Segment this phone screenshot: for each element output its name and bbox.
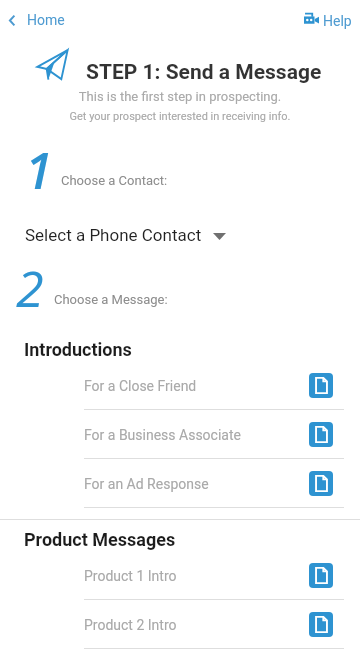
- other: Open message template: [309, 422, 333, 447]
- staticText: Help: [323, 13, 352, 29]
- staticText: Select a Phone Contact: [25, 225, 202, 245]
- button[interactable]: Help: [298, 8, 356, 34]
- staticText: Product 2 Intro: [84, 617, 177, 633]
- staticText: Product 1 Intro: [84, 568, 177, 584]
- staticText: Choose a Message:: [54, 292, 168, 307]
- staticText: For an Ad Response: [84, 476, 209, 492]
- button[interactable]: Product 2 Intro: [0, 600, 360, 649]
- staticText: Home: [27, 12, 65, 28]
- staticText: For a Business Associate: [84, 427, 241, 443]
- staticText: Product Messages: [24, 529, 176, 550]
- other: Open message template: [309, 471, 333, 496]
- button[interactable]: Product 1 Intro: [0, 551, 360, 600]
- staticText: Get your prospect interested in receivin…: [0, 110, 360, 123]
- other: Open message template: [309, 563, 333, 588]
- other: Open message template: [309, 373, 333, 398]
- other: Open message template: [309, 612, 333, 637]
- button[interactable]: For a Close Friend: [0, 361, 360, 410]
- staticText: 2: [16, 254, 44, 322]
- button[interactable]: For an Ad Response: [0, 459, 360, 508]
- staticText: STEP 1: Send a Message: [86, 60, 322, 85]
- button[interactable]: For a Business Associate: [0, 410, 360, 459]
- staticText: For a Close Friend: [84, 378, 197, 394]
- staticText: 1: [25, 136, 53, 204]
- staticText: Choose a Contact:: [61, 173, 168, 188]
- button[interactable]: Home: [0, 7, 73, 33]
- staticText: Introductions: [24, 339, 132, 360]
- staticText: This is the first step in prospecting.: [0, 89, 360, 104]
- button[interactable]: Select a Phone Contact: [18, 221, 236, 249]
